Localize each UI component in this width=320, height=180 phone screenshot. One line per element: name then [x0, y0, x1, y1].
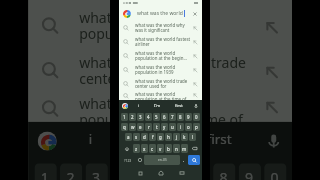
staticText: t [156, 124, 158, 130]
button[interactable]: c [149, 144, 156, 153]
button[interactable]: Voice search [264, 131, 283, 151]
button[interactable]: 8 [213, 163, 235, 180]
button[interactable]: m [181, 144, 188, 153]
button[interactable]: 6 [162, 163, 184, 180]
button[interactable]: ?123 [121, 155, 135, 165]
button[interactable]: Voice search [193, 103, 199, 109]
staticText: e [139, 124, 142, 130]
button[interactable]: what was the world population in 1939 [41, 4, 280, 49]
button[interactable]: what was the world population at the beg… [123, 49, 198, 63]
button[interactable]: w [129, 123, 136, 131]
staticText: q [123, 124, 126, 130]
button[interactable]: o [185, 123, 192, 131]
button[interactable]: what was the world [123, 6, 198, 21]
button[interactable]: 2 [129, 113, 136, 121]
staticText: what was the world trade center used for [135, 78, 191, 90]
button[interactable]: Recents [135, 168, 145, 178]
staticText: i [89, 131, 95, 151]
button[interactable]: 4 [145, 113, 152, 121]
button[interactable]: Backspace [189, 144, 200, 153]
staticText: a [127, 134, 130, 140]
button[interactable]: Clear [192, 11, 198, 17]
staticText: l [192, 134, 194, 140]
staticText: 7 [194, 167, 204, 180]
button[interactable]: p [193, 123, 200, 131]
button[interactable]: y [161, 123, 168, 131]
button[interactable]: b [165, 144, 172, 153]
button[interactable]: 2 [60, 163, 82, 180]
staticText: w [131, 124, 135, 130]
button[interactable]: Shift [121, 144, 132, 153]
staticText: u [171, 124, 174, 130]
button[interactable]: n [173, 144, 180, 153]
button[interactable]: g [157, 133, 164, 141]
button[interactable]: 8 [177, 113, 184, 121]
button[interactable]: 7 [169, 113, 176, 121]
button[interactable]: 9 [239, 163, 261, 180]
button[interactable]: q [121, 123, 128, 131]
staticText: I'm [154, 103, 161, 109]
staticText: 0 [271, 167, 280, 180]
button[interactable]: Google [38, 131, 57, 151]
staticText: . [183, 157, 185, 163]
staticText: j [176, 134, 178, 140]
button[interactable]: 9 [185, 113, 192, 121]
button[interactable]: . [181, 155, 187, 165]
button[interactable]: s [133, 133, 140, 141]
button[interactable]: r [145, 123, 152, 131]
staticText: 3 [92, 167, 101, 180]
button[interactable]: 1 [121, 113, 128, 121]
staticText: v [159, 146, 162, 152]
button[interactable]: Back [177, 168, 187, 178]
button[interactable]: Home [156, 168, 166, 178]
button[interactable]: what was the world population at the beg… [41, 0, 280, 4]
button[interactable]: 7 [188, 163, 210, 180]
button[interactable]: i [177, 123, 184, 131]
button[interactable]: what was the world why was it significan… [123, 21, 198, 35]
button[interactable]: 0 [264, 163, 286, 180]
button[interactable]: 5 [153, 113, 160, 121]
button[interactable]: what was the world trade center used for [41, 48, 280, 93]
staticText: first [175, 103, 183, 109]
staticText: 1 [123, 114, 126, 120]
button[interactable]: Emoji [136, 155, 143, 165]
button[interactable]: d [141, 133, 148, 141]
staticText: 8 [179, 114, 182, 120]
button[interactable]: x [141, 144, 148, 153]
button[interactable]: 5 [137, 163, 159, 180]
button[interactable]: 3 [85, 163, 108, 180]
button[interactable]: what was the world population in 1939 [123, 63, 198, 77]
button[interactable]: t [153, 123, 160, 131]
staticText: 4 [117, 167, 127, 180]
button[interactable]: Space [144, 155, 180, 165]
staticText: x [143, 146, 146, 152]
button[interactable]: what was the world population at the tim… [41, 93, 280, 122]
button[interactable]: what was the world trade center used for [123, 77, 198, 91]
staticText: 8 [219, 167, 229, 180]
button[interactable]: h [165, 133, 172, 141]
button[interactable]: what was the world fastest airliner [123, 35, 198, 49]
button[interactable]: 1 [34, 163, 57, 180]
button[interactable]: 0 [193, 113, 200, 121]
button[interactable]: l [189, 133, 196, 141]
button[interactable]: k [181, 133, 188, 141]
button[interactable]: f [149, 133, 156, 141]
button[interactable]: j [173, 133, 180, 141]
staticText: I'm [140, 131, 162, 151]
button[interactable]: what was the world population at the tim… [123, 91, 198, 100]
staticText: what was the world population in 1939 [135, 64, 191, 76]
button[interactable]: u [169, 123, 176, 131]
button[interactable]: z [133, 144, 140, 153]
button[interactable]: 6 [161, 113, 168, 121]
button[interactable]: v [157, 144, 164, 153]
button[interactable]: 3 [137, 113, 144, 121]
staticText: 2 [66, 167, 76, 180]
staticText: m [182, 146, 187, 152]
staticText: p [195, 124, 198, 130]
button[interactable]: a [125, 133, 132, 141]
button[interactable]: Google [122, 103, 128, 109]
button[interactable]: Search [188, 155, 200, 165]
button[interactable]: e [137, 123, 144, 131]
button[interactable]: 4 [111, 163, 133, 180]
